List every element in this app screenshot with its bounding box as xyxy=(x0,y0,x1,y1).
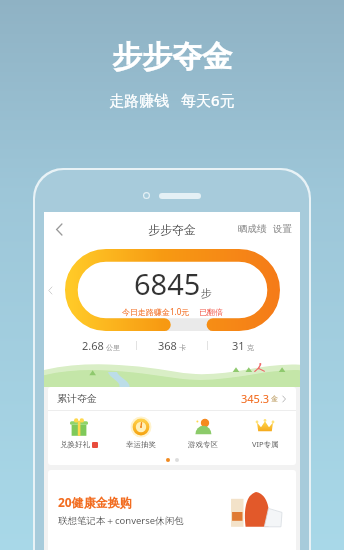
button[interactable]: 幸运抽奖 xyxy=(110,411,172,454)
staticText: 345.3 xyxy=(241,391,270,406)
staticText: 20健康金换购 xyxy=(58,494,132,510)
button[interactable]: Back xyxy=(44,214,74,244)
staticText: 克 xyxy=(247,343,254,352)
staticText: 步步夺金 xyxy=(148,222,196,237)
staticText: 今日走路赚金1.0元 xyxy=(122,306,190,317)
staticText: 已翻倍 xyxy=(199,307,223,317)
staticText: 卡 xyxy=(179,343,186,352)
button[interactable]: 游戏专区 xyxy=(172,411,234,454)
staticText: 2.68 xyxy=(82,338,104,353)
button[interactable]: VIP专属 xyxy=(234,411,296,454)
button[interactable]: 20健康金换购 xyxy=(48,470,296,550)
staticText: 步步夺金 xyxy=(112,38,232,76)
staticText: 晒成绩 xyxy=(238,223,267,235)
staticText: 设置 xyxy=(273,223,292,235)
staticText: 金 xyxy=(271,394,278,403)
staticText: 幸运抽奖 xyxy=(126,440,156,449)
button[interactable]: 设置 xyxy=(270,219,295,239)
button[interactable]: 6845 xyxy=(65,249,280,331)
staticText: 6845 xyxy=(134,264,201,303)
staticText: 步 xyxy=(201,286,212,300)
staticText: VIP专属 xyxy=(252,439,279,449)
staticText: 公里 xyxy=(106,343,120,352)
staticText: 游戏专区 xyxy=(188,440,218,449)
staticText: 31 xyxy=(232,338,245,353)
button[interactable]: 兑换好礼 xyxy=(48,411,110,454)
staticText: 368 xyxy=(158,338,177,353)
staticText: 联想笔记本＋converse休闲包 xyxy=(58,514,184,527)
staticText: 累计夺金 xyxy=(57,392,97,405)
button[interactable]: 晒成绩 xyxy=(235,219,270,239)
button[interactable]: 累计夺金 xyxy=(48,387,296,410)
staticText: 走路赚钱 每天6元 xyxy=(109,90,235,110)
staticText: 兑换好礼 xyxy=(60,440,90,449)
